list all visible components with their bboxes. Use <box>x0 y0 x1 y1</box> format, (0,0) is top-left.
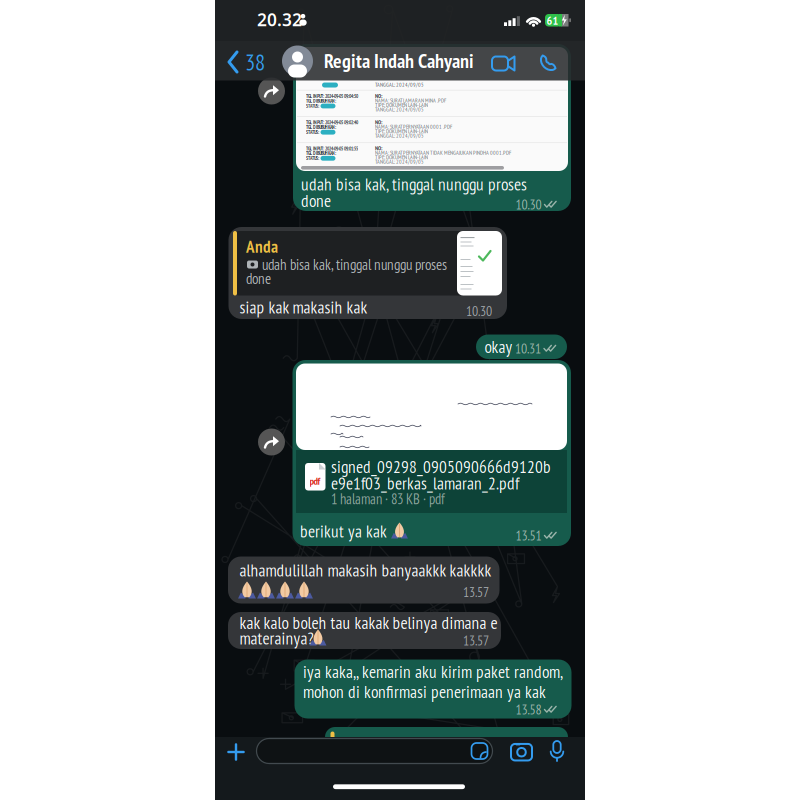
button[interactable]: Forward <box>257 428 285 456</box>
button[interactable]: Voice message <box>550 740 564 762</box>
staticText: siap kak makasih kak <box>239 296 367 318</box>
staticText: TANGGAL: 2024/09/05 <box>375 106 424 113</box>
staticText: 38 <box>245 47 265 77</box>
staticText: okay <box>484 335 512 358</box>
staticText: TGL INPUT: 2024-09-05 09:04:50 <box>306 93 358 99</box>
staticText: NO: <box>375 92 382 99</box>
staticText: TIPE: DOKUMEN LAIN-LAIN <box>375 127 428 135</box>
staticText: TANGGAL: 2024/09/05 <box>375 132 424 139</box>
staticText: materainya? <box>239 627 313 649</box>
staticText: TIPE: DOKUMEN LAIN-LAIN <box>375 153 428 161</box>
staticText: STATUS: <box>306 129 319 135</box>
staticText: 13.57 <box>463 632 489 649</box>
staticText: alhamdulillah makasih banyaakkk kakkkk <box>239 559 491 581</box>
button[interactable]: Message <box>256 738 492 763</box>
staticText: TGL DIBUBUHKAN: <box>306 124 336 130</box>
staticText: TGL DIBUBUHKAN: <box>306 150 336 156</box>
staticText: udah bisa kak, tinggal nunggu proses <box>262 255 447 274</box>
button[interactable]: Regita Indah Cahyani <box>282 43 572 79</box>
button[interactable]: Forward <box>257 77 285 105</box>
staticText: mohon di konfirmasi penerimaan ya kak <box>303 680 546 703</box>
staticText: 1 halaman · 83 KB · pdf <box>331 490 445 508</box>
staticText: NO: <box>375 118 382 126</box>
staticText: TANGGAL: 2024/09/05 <box>375 81 424 88</box>
staticText: berikut ya kak <box>300 520 387 542</box>
staticText: TANGGAL: 2024/09/05 <box>375 158 424 165</box>
staticText: TGL INPUT: 2024-09-05 09:02:40 <box>306 119 358 126</box>
staticText: TGL INPUT: 2024-09-05 09:01:55 <box>306 145 358 152</box>
button[interactable]: Call <box>536 51 559 74</box>
staticText: 10.30 <box>515 196 541 213</box>
staticText: Anda <box>246 235 278 258</box>
staticText: STATUS: <box>306 155 319 161</box>
staticText: 20.32 <box>257 8 302 31</box>
staticText: TGL DIBUBUHKAN: <box>306 98 336 104</box>
button[interactable]: Video call <box>491 52 517 75</box>
staticText: pdf <box>309 474 320 487</box>
staticText: udah bisa kak, tinggal nunggu proses <box>301 173 527 195</box>
staticText: signed_09298_0905090666d9120b <box>331 455 551 478</box>
staticText: done <box>246 269 271 288</box>
staticText: kak kalo boleh tau kakak belinya dimana … <box>239 611 497 634</box>
staticText: 61 <box>546 12 558 28</box>
button[interactable]: Back <box>223 48 269 76</box>
staticText: NO: <box>375 144 382 152</box>
button[interactable]: Attach <box>227 743 245 761</box>
staticText: 10.30 <box>466 302 492 320</box>
staticText: NAMA: SURAT PERNYATAAN TIDAK MENGAJUKAN … <box>375 149 511 156</box>
staticText: NAMA: SURAT PERNYATAAN 0001 .PDF <box>375 123 452 130</box>
staticText: STATUS: <box>306 103 319 109</box>
staticText: TIPE: DOKUMEN LAIN-LAIN <box>375 101 428 108</box>
staticText: iya kaka,, kemarin aku kirim paket rando… <box>303 660 563 683</box>
staticText: 13.51 <box>515 527 541 544</box>
staticText: e9e1f03_berkas_lamaran_2.pdf <box>331 472 519 494</box>
staticText: NAMA: SURAT LAMARAN MINA .PDF <box>375 97 446 104</box>
button[interactable]: Camera <box>511 742 532 761</box>
staticText: 10.31 <box>515 340 541 357</box>
staticText: Regita Indah Cahyani <box>324 48 474 73</box>
staticText: 13.58 <box>515 701 541 718</box>
staticText: 13.57 <box>463 583 489 601</box>
staticText: done <box>301 189 331 212</box>
